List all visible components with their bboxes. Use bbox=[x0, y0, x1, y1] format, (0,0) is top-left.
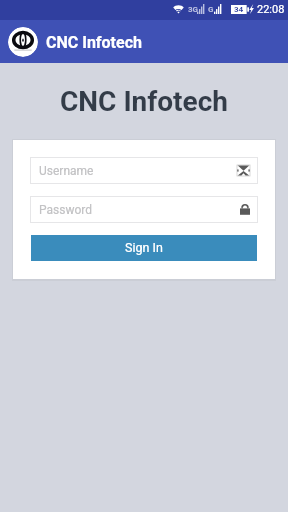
button[interactable]: Username bbox=[30, 157, 258, 184]
other: Email bbox=[237, 165, 250, 176]
staticText: CNC Infotech bbox=[46, 33, 142, 52]
staticText: 3G bbox=[188, 5, 199, 14]
staticText: 22:08 bbox=[257, 3, 285, 16]
button[interactable]: Password bbox=[30, 196, 258, 223]
staticText: CNC Infotech bbox=[0, 85, 288, 118]
button[interactable]: Sign In bbox=[31, 235, 257, 261]
button[interactable]: CNC Infotech logo bbox=[0, 20, 288, 63]
other: CNC Infotech logo bbox=[8, 27, 38, 57]
staticText: Username bbox=[39, 164, 94, 178]
other: Password bbox=[240, 204, 250, 215]
staticText: G bbox=[208, 5, 214, 14]
staticText: Sign In bbox=[125, 240, 163, 255]
staticText: Password bbox=[39, 203, 93, 217]
staticText: 34 bbox=[234, 5, 244, 14]
